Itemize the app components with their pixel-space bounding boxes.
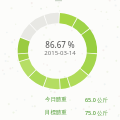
staticText: 75.0 公斤 <box>85 109 108 116</box>
staticText: 2015-03-14 <box>0 49 120 57</box>
staticText: 86.67 % <box>0 39 120 50</box>
button[interactable]: 今日體重 <box>45 93 108 106</box>
staticText: 65.0 公斤 <box>85 96 108 103</box>
staticText: 目標體重 <box>45 109 67 116</box>
staticText: 今日體重 <box>45 96 67 103</box>
button[interactable]: 目標體重 <box>45 106 108 119</box>
